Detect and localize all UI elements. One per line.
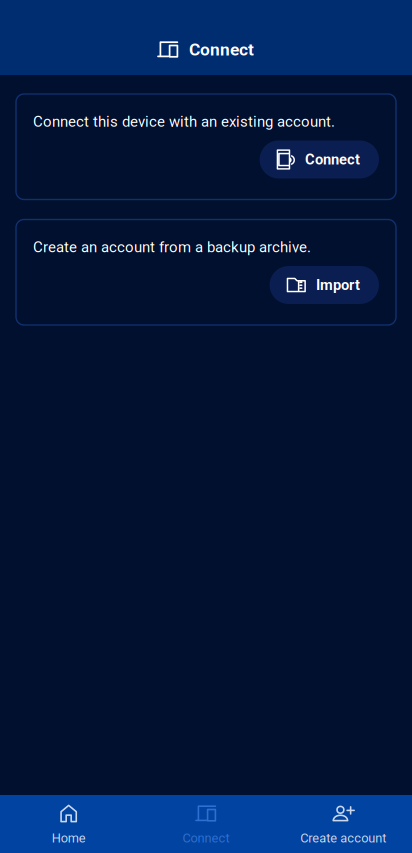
button[interactable]: Connect [137, 795, 275, 853]
button[interactable]: Home [0, 795, 137, 853]
staticText: Connect this device with an existing acc… [33, 113, 335, 130]
staticText: Connect [189, 39, 254, 60]
button[interactable]: Create account [275, 795, 412, 853]
staticText: Import [316, 276, 360, 294]
staticText: Connect [305, 151, 360, 168]
button[interactable]: Import [270, 266, 379, 304]
staticText: Connect [182, 830, 229, 845]
button[interactable]: Connect [260, 140, 379, 178]
staticText: Create account [300, 830, 386, 845]
staticText: Create an account from a backup archive. [33, 238, 311, 256]
staticText: Home [52, 830, 86, 845]
